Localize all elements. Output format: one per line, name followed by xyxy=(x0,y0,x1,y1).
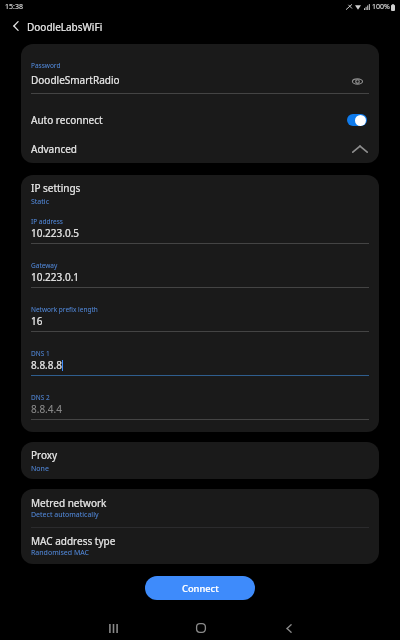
staticText: 10.223.0.5 xyxy=(31,226,80,240)
staticText: IP settings xyxy=(31,181,81,195)
button[interactable]: Home xyxy=(177,613,225,640)
button[interactable]: Show password xyxy=(348,72,366,90)
button[interactable]: IP settings xyxy=(21,175,379,207)
staticText: DNS 1 xyxy=(31,349,50,358)
button[interactable]: Password xyxy=(21,44,379,94)
button[interactable]: MAC address type xyxy=(21,527,379,558)
button[interactable]: Back xyxy=(0,14,31,44)
staticText: 16 xyxy=(31,314,43,328)
staticText: DoodleLabsWiFi xyxy=(27,20,103,34)
staticText: Advanced xyxy=(31,142,353,156)
button[interactable]: Metred network xyxy=(21,489,379,527)
button[interactable]: Proxy xyxy=(21,442,379,479)
staticText: Detect automatically xyxy=(31,510,99,520)
staticText: Proxy xyxy=(31,448,58,462)
staticText: MAC address type xyxy=(31,534,116,548)
staticText: Password xyxy=(31,61,61,70)
staticText: 8.8.4.4 xyxy=(31,402,62,416)
button[interactable]: Recents xyxy=(89,613,137,640)
staticText: Auto reconnect xyxy=(31,113,349,127)
button[interactable]: IP address xyxy=(21,217,379,244)
staticText: IP address xyxy=(31,217,63,226)
button[interactable]: Auto reconnect xyxy=(21,106,379,134)
staticText: Connect xyxy=(182,582,219,595)
staticText: DoodleSmartRadio xyxy=(31,73,351,87)
staticText: Gateway xyxy=(31,261,58,270)
button[interactable]: DNS 1 xyxy=(21,349,379,376)
button[interactable]: Gateway xyxy=(21,261,379,288)
button[interactable]: Connect xyxy=(145,576,255,600)
staticText: DNS 2 xyxy=(31,393,50,402)
staticText: None xyxy=(31,464,49,474)
button[interactable]: Back xyxy=(265,613,313,640)
staticText: 10.223.0.1 xyxy=(31,270,80,284)
button[interactable]: Network prefix length xyxy=(21,305,379,332)
staticText: Metred network xyxy=(31,496,107,510)
button[interactable]: Advanced xyxy=(21,135,379,163)
staticText: 8.8.8.8 xyxy=(31,358,62,372)
staticText: Static xyxy=(31,197,49,207)
staticText: 15:38 xyxy=(5,2,23,12)
staticText: Network prefix length xyxy=(31,305,98,314)
button[interactable]: DNS 2 xyxy=(21,393,379,420)
staticText: 100% xyxy=(372,2,390,12)
staticText: Randomised MAC xyxy=(31,548,90,558)
button[interactable]: Auto reconnect xyxy=(347,114,367,126)
